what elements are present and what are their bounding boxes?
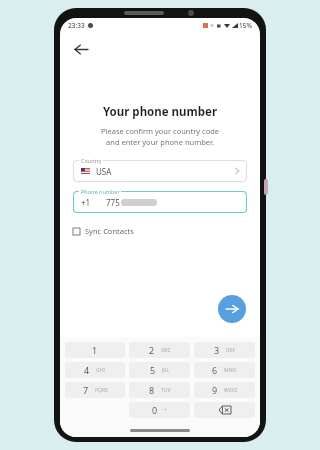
staticText: 775 [106,197,120,208]
staticText: GHI [96,367,106,374]
staticText: ≈ [210,22,215,28]
staticText: WXYZ [224,387,238,394]
staticText: 4 [84,364,90,376]
staticText: Phone number [81,188,120,195]
staticText: +1 [81,197,91,208]
button[interactable]: Phone number [73,191,247,213]
button[interactable]: Sync Contacts [73,223,134,239]
button[interactable]: 6 [194,362,255,378]
staticText: MNO [224,367,237,374]
button[interactable]: 8 [129,382,190,398]
staticText: 9 [212,384,218,396]
button[interactable]: 7 [65,382,125,398]
staticText: ABC [161,347,171,354]
staticText: USA [96,166,112,177]
staticText: Country [81,157,102,164]
staticText: 0 [152,404,158,416]
button[interactable]: 5 [129,362,190,378]
staticText: DEF [226,347,236,354]
staticText: 5 [150,364,156,376]
staticText: 15% [239,21,252,30]
staticText: Sync Contacts [85,226,134,236]
button[interactable]: Back [68,36,94,62]
staticText: PQRS [95,387,108,394]
staticText: 3 [214,344,220,356]
button[interactable]: Continue [218,295,246,323]
staticText: 2 [149,344,155,356]
staticText: 7 [83,384,89,396]
staticText: 6 [212,364,218,376]
button[interactable]: 0 [129,402,190,418]
staticText: Please confirm your country code and ent… [78,126,242,147]
staticText: JKL [162,367,170,374]
button[interactable]: 9 [194,382,255,398]
staticText: TUV [161,387,171,394]
button[interactable]: 3 [194,342,255,358]
button[interactable]: 4 [65,362,125,378]
button[interactable]: Backspace [194,402,255,418]
button[interactable]: 1 [65,342,125,358]
staticText: 8 [149,384,155,396]
staticText: Your phone number [60,104,260,120]
staticText: 1 [92,344,98,356]
button[interactable]: Country [73,160,247,182]
staticText: + [164,407,167,414]
staticText: 23:33 [68,21,85,30]
button[interactable]: 2 [129,342,190,358]
